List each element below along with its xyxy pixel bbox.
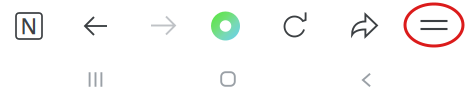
button[interactable]: Status <box>211 11 240 40</box>
button[interactable]: Recent apps <box>89 72 102 87</box>
staticText: N <box>20 12 37 40</box>
button[interactable]: Reload <box>283 13 309 39</box>
button[interactable]: Back <box>362 74 371 86</box>
button[interactable]: Menu <box>405 3 463 47</box>
button[interactable]: Share <box>351 13 378 38</box>
button[interactable]: Forward <box>150 13 176 38</box>
button[interactable]: Site logo <box>16 13 42 39</box>
button[interactable]: Back <box>84 14 108 38</box>
button[interactable]: Home <box>220 71 236 87</box>
